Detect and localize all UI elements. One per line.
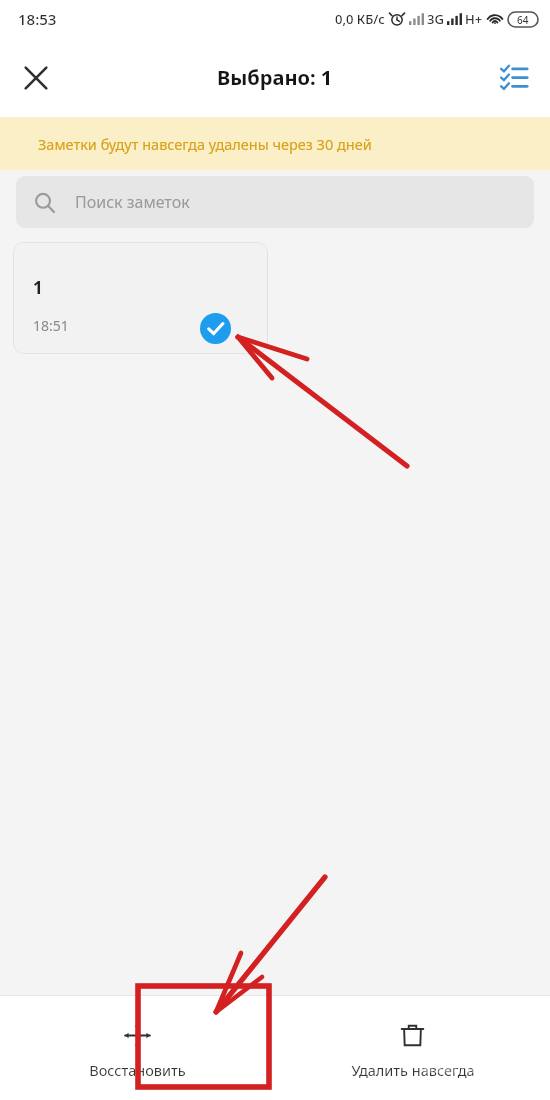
staticText: H+ <box>465 10 483 28</box>
staticText: 0,0 КБ/с <box>335 10 385 28</box>
staticText: 18:53 <box>18 9 57 29</box>
staticText: Удалить навсегда <box>351 1060 475 1080</box>
staticText: 1 <box>33 276 43 299</box>
button[interactable]: Поиск заметок <box>16 176 534 228</box>
staticText: Поиск заметок <box>75 191 190 213</box>
button[interactable]: Close <box>10 52 62 104</box>
button[interactable]: Удалить навсегда <box>275 996 550 1100</box>
staticText: 64 <box>517 13 529 27</box>
button[interactable]: 1 <box>13 242 268 354</box>
staticText: Заметки будут навсегда удалены через 30 … <box>38 134 372 154</box>
button[interactable]: Восстановить <box>0 996 275 1100</box>
staticText: user-life.com <box>423 1055 534 1078</box>
button[interactable]: Select all <box>488 52 540 104</box>
staticText: Восстановить <box>89 1060 186 1080</box>
other: Selected <box>200 313 231 344</box>
staticText: Выбрано: 1 <box>217 64 333 91</box>
staticText: 3G <box>427 10 444 28</box>
staticText: 18:51 <box>33 316 69 335</box>
